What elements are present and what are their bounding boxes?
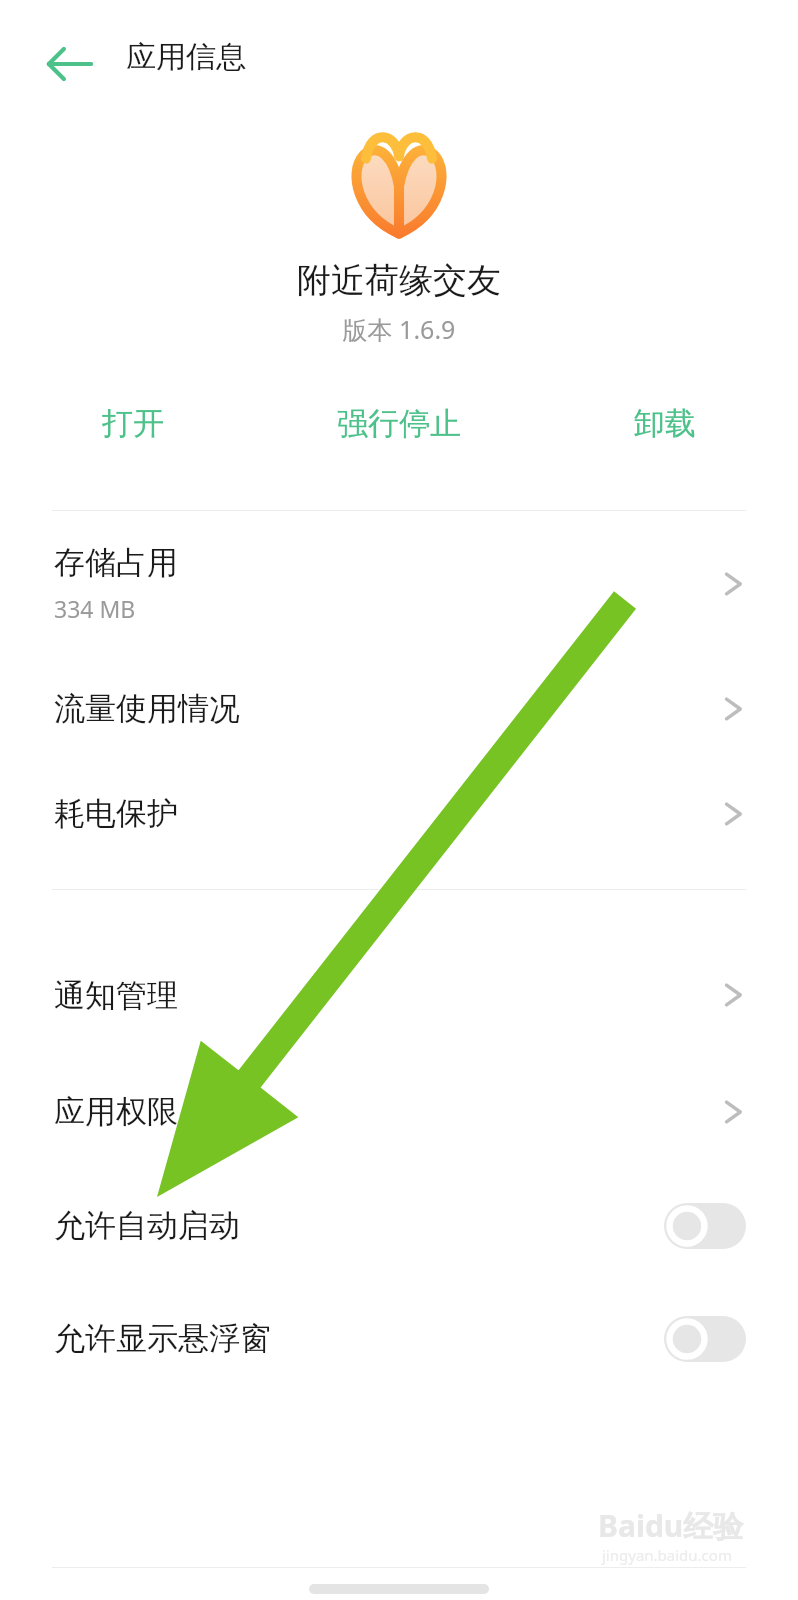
staticText: 流量使用情况 <box>54 689 240 728</box>
staticText: 应用信息 <box>126 38 246 76</box>
button[interactable]: 允许显示悬浮窗 <box>0 1282 798 1395</box>
staticText: 允许自动启动 <box>54 1206 240 1245</box>
staticText: 334 MB <box>54 593 136 624</box>
staticText: 应用权限 <box>54 1092 178 1131</box>
button[interactable]: 强行停止 <box>266 404 532 443</box>
staticText: jingyan.baidu.com <box>602 1545 732 1565</box>
button[interactable]: 通知管理 <box>0 890 798 1054</box>
button[interactable]: 允许自动启动 <box>0 1169 798 1282</box>
button[interactable]: 耗电保护 <box>0 761 798 866</box>
staticText: 卸载 <box>634 404 696 443</box>
button[interactable]: 流量使用情况 <box>0 656 798 761</box>
staticText: 版本 1.6.9 <box>0 312 798 346</box>
button[interactable]: 应用权限 <box>0 1054 798 1169</box>
staticText: Baidu经验 <box>598 1505 744 1546</box>
staticText: 附近荷缘交友 <box>0 259 798 302</box>
button[interactable]: Back <box>38 32 102 96</box>
staticText: 强行停止 <box>337 404 461 443</box>
staticText: 耗电保护 <box>54 794 178 833</box>
staticText: 允许显示悬浮窗 <box>54 1319 271 1358</box>
button[interactable]: 打开 <box>0 404 266 443</box>
staticText: 打开 <box>102 404 164 443</box>
staticText: 存储占用 <box>54 543 178 582</box>
staticText: 通知管理 <box>54 976 178 1015</box>
button[interactable]: 存储占用 <box>0 511 798 656</box>
button[interactable]: 卸载 <box>532 404 798 443</box>
